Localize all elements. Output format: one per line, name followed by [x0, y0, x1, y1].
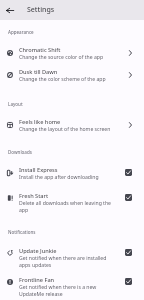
staticText: Settings [27, 5, 55, 15]
button[interactable]: Open [124, 122, 132, 128]
staticText: Fresh Start [19, 192, 49, 200]
button[interactable]: Frontline Fan [0, 276, 144, 298]
other: Fresh Start [7, 195, 13, 201]
button[interactable]: Toggle setting [124, 278, 132, 285]
button[interactable]: Chromatic Shift [0, 46, 144, 61]
staticText: Appearance [8, 29, 34, 35]
button[interactable]: Toggle setting [124, 249, 132, 256]
staticText: Chromatic Shift [19, 46, 61, 54]
staticText: Get notified when there is a new UpdateM… [19, 284, 114, 298]
staticText: Change the color scheme of the app [19, 76, 106, 83]
staticText: Change the source color of the app [19, 54, 104, 61]
staticText: Update Junkie [19, 247, 57, 255]
button[interactable]: Toggle setting [124, 194, 132, 201]
staticText: Get notified when there are installed ap… [19, 255, 114, 269]
button[interactable]: Feels like home [0, 118, 144, 133]
button[interactable]: Install Express [0, 166, 144, 181]
staticText: Install Express [19, 166, 58, 174]
other: Install Express [7, 170, 13, 176]
button[interactable]: Toggle setting [124, 169, 132, 176]
staticText: Downloads [8, 149, 32, 155]
button[interactable]: Open [124, 72, 132, 78]
other: Frontline Fan [7, 279, 13, 285]
other: Update Junkie [7, 250, 13, 256]
button[interactable]: Update Junkie [0, 247, 144, 269]
staticText: Dusk till Dawn [19, 68, 58, 76]
other: Dusk till Dawn [7, 72, 13, 78]
staticText: Install the app after downloading [19, 174, 99, 181]
staticText: Delete all downloads when leaving the ap… [19, 200, 114, 214]
button[interactable]: Back [0, 0, 20, 20]
other: Feels like home [7, 122, 13, 128]
button[interactable]: Fresh Start [0, 192, 144, 214]
button[interactable]: Open [124, 50, 132, 56]
other: Chromatic Shift [7, 50, 13, 56]
staticText: Notifications [8, 229, 36, 235]
staticText: Feels like home [19, 118, 61, 126]
staticText: Layout [8, 101, 23, 107]
staticText: Frontline Fan [19, 276, 55, 284]
button[interactable]: Dusk till Dawn [0, 68, 144, 83]
staticText: Change the layout of the home screen [19, 126, 111, 133]
